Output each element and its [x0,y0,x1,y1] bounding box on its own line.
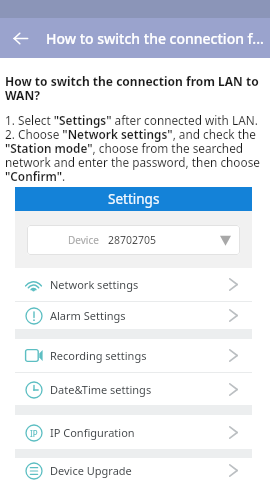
staticText: Device Upgrade [50,463,132,478]
staticText: Device [68,233,99,247]
staticText: Settings [108,190,160,208]
button[interactable]: Back [0,18,41,58]
staticText: Recording settings [50,348,147,363]
staticText: Date&Time settings [50,382,152,397]
button[interactable]: Recording settings [15,339,252,372]
button[interactable]: Network settings [15,268,252,301]
staticText: How to switch the connection f... [46,29,264,48]
staticText: 1. Select "Settings" after connected wit… [5,112,260,184]
button[interactable]: Device Upgrade [15,458,252,480]
staticText: Network settings [50,277,139,292]
staticText: IP [30,428,38,439]
staticText: Alarm Settings [50,308,126,323]
staticText: How to switch the connection from LAN to… [5,73,265,103]
button[interactable]: Device [27,225,240,255]
button[interactable]: Alarm Settings [15,302,252,329]
button[interactable]: Date&Time settings [15,373,252,405]
button[interactable]: IP [15,415,252,449]
staticText: IP Configuration [50,425,135,440]
staticText: 28702705 [108,233,157,247]
